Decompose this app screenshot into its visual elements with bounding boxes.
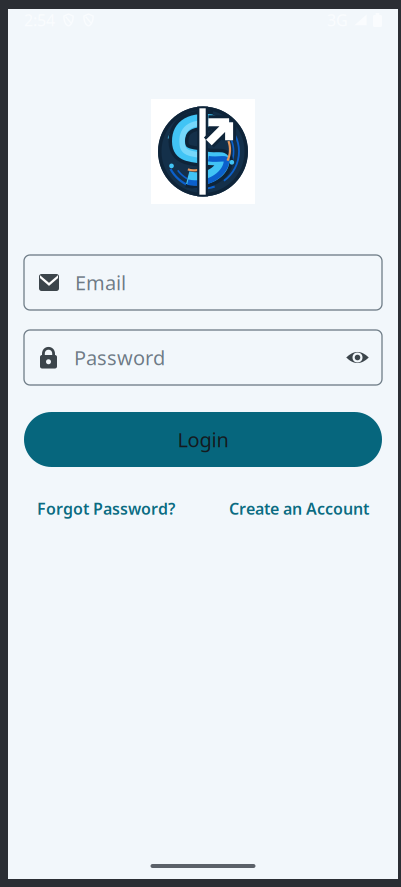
button[interactable]: Login xyxy=(24,412,382,467)
staticText: Login xyxy=(177,426,228,453)
staticText: Create an Account xyxy=(229,498,369,519)
button[interactable]: Create an Account xyxy=(229,498,369,519)
button[interactable]: Forgot Password? xyxy=(37,498,175,519)
staticText: Email xyxy=(75,269,126,296)
staticText: Forgot Password? xyxy=(37,498,175,519)
staticText: Password xyxy=(74,344,165,371)
button[interactable]: Show password xyxy=(340,331,375,384)
